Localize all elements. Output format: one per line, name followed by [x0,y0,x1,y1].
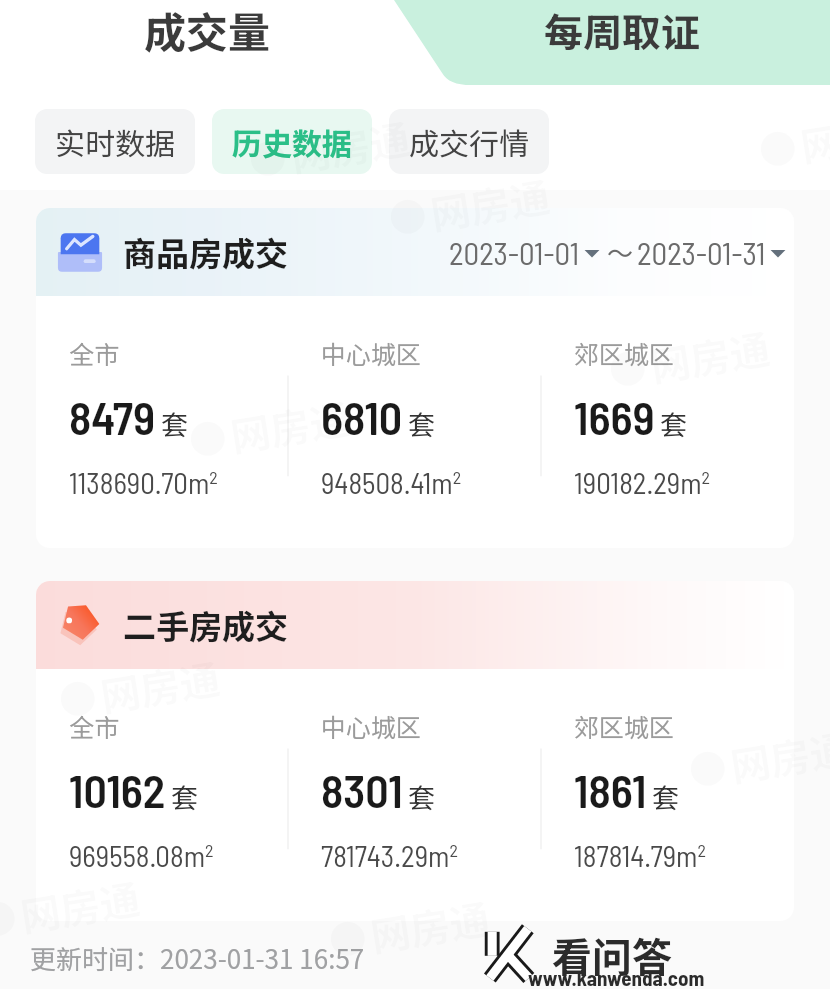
staticText: 套 [652,777,679,816]
button[interactable]: 选择日期 [766,242,790,262]
staticText: 商品房成交 [123,228,288,276]
staticText: 2023-01-01 [449,234,580,271]
button[interactable]: 成交量 [0,0,415,85]
staticText: 套 [408,777,435,816]
staticText: 948508.41m2 [321,465,462,500]
staticText: 969558.08m2 [69,838,214,873]
staticText: www.kanwenda.com [528,965,705,989]
staticText: 网房通 [426,166,554,242]
staticText: 成交行情 [409,120,529,163]
staticText: 套 [408,404,435,443]
staticText: 8301 [321,762,403,817]
staticText: 看问答 [552,926,672,984]
staticText: 套 [161,404,188,443]
staticText: 网房通 [286,108,414,184]
staticText: 网房通 [726,718,830,794]
staticText: 2023-01-31 [637,234,766,271]
staticText: 网房通 [646,318,774,394]
staticText: 更新时间：2023-01-31 16:57 [30,939,365,977]
button[interactable]: 选择日期 [580,242,604,262]
other: 商品房成交 [57,229,103,275]
staticText: 781743.29m2 [321,838,458,873]
staticText: 1138690.70m2 [69,465,218,500]
staticText: 实时数据 [55,120,175,163]
button[interactable]: 成交行情 [389,109,549,174]
staticText: 网房通 [226,388,354,464]
staticText: 中心城区 [321,335,422,371]
staticText: 网房通 [366,888,494,964]
staticText: 成交量 [144,0,271,60]
staticText: 套 [660,404,687,443]
staticText: 全市 [69,335,120,371]
staticText: 郊区城区 [574,335,675,371]
staticText: 全市 [69,708,120,744]
staticText: 1861 [574,762,647,817]
staticText: 8479 [69,389,156,444]
button[interactable]: 商品房成交 [36,208,794,548]
staticText: 历史数据 [232,120,352,163]
staticText: ～ [607,233,634,271]
staticText: 每周取证 [544,2,701,58]
button[interactable]: 每周取证 [415,0,830,85]
button[interactable]: 实时数据 [35,109,195,174]
other: 二手房成交 [57,602,103,648]
staticText: 6810 [321,389,403,444]
staticText: 套 [171,777,198,816]
staticText: 1669 [574,389,655,444]
staticText: 10162 [69,762,166,817]
staticText: 网房通 [96,648,224,724]
staticText: 中心城区 [321,708,422,744]
staticText: 190182.29m2 [574,465,711,500]
staticText: 郊区城区 [574,708,675,744]
button[interactable]: 历史数据 [212,109,372,174]
staticText: 187814.79m2 [574,838,706,873]
staticText: 二手房成交 [123,601,288,649]
button[interactable]: 二手房成交 [36,581,794,921]
